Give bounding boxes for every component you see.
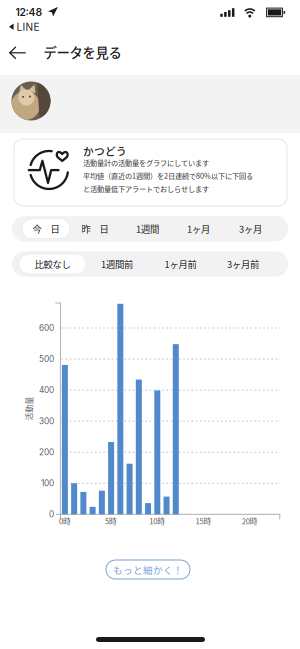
staticText: 活動量計の活動量をグラフにしています	[83, 157, 209, 168]
button[interactable]: 3ヶ月前	[219, 254, 267, 274]
staticText: 今 日	[32, 222, 59, 235]
button[interactable]: 昨 日	[71, 219, 119, 239]
staticText: 3ヶ月前	[227, 257, 259, 271]
button[interactable]: ペットのプロフィール	[7, 77, 55, 125]
staticText: と活動量低下アラートでおしらせします	[83, 183, 209, 194]
staticText: 平均値（直近の1週間）を2日連続で80%以下に下回る	[83, 170, 253, 181]
staticText: 1ヶ月	[187, 222, 210, 235]
button[interactable]: LINE	[9, 21, 51, 33]
staticText: 昨 日	[81, 222, 108, 235]
staticText: 100	[41, 478, 54, 488]
button[interactable]: 1ヶ月	[174, 219, 222, 239]
button[interactable]: 3ヶ月	[226, 219, 274, 239]
staticText: 0時	[59, 515, 71, 527]
button[interactable]: 1週間前	[93, 254, 141, 274]
staticText: もっと細かく！	[113, 562, 183, 576]
button[interactable]: 比較なし	[28, 254, 76, 274]
button[interactable]: 1週間	[123, 219, 171, 239]
staticText: 比較なし	[34, 257, 70, 271]
button[interactable]: もっと細かく！	[106, 560, 190, 579]
staticText: 3ヶ月	[239, 222, 262, 235]
staticText: 0	[49, 509, 54, 519]
staticText: かつどう	[83, 143, 127, 158]
staticText: 300	[39, 416, 54, 426]
staticText: 600	[39, 323, 54, 333]
button[interactable]: 戻る	[1, 39, 35, 67]
staticText: 1週間	[136, 222, 159, 235]
staticText: 20時	[242, 515, 258, 527]
staticText: 200	[39, 447, 54, 457]
staticText: データを見る	[43, 42, 121, 62]
staticText: 1ヶ月前	[164, 257, 196, 271]
staticText: 400	[39, 385, 54, 395]
staticText: 15時	[195, 515, 211, 527]
button[interactable]: 今 日	[22, 219, 70, 239]
staticText: 500	[39, 354, 54, 364]
staticText: LINE	[16, 21, 39, 33]
button[interactable]: 1ヶ月前	[156, 254, 204, 274]
staticText: 活動量	[17, 403, 41, 414]
staticText: 10時	[149, 515, 165, 527]
staticText: 12:48	[15, 6, 42, 18]
staticText: 5時	[105, 515, 117, 527]
staticText: 1週間前	[101, 257, 133, 271]
